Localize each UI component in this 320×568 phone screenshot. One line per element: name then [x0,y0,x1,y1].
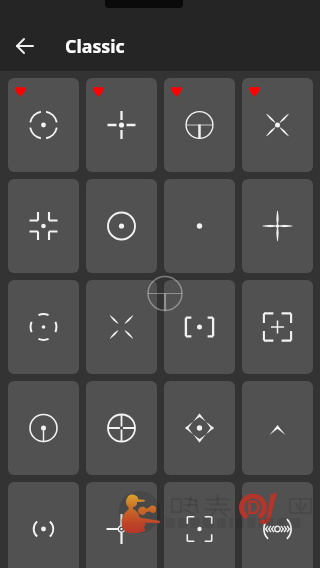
button[interactable]: Reticle 16 [8,482,79,568]
button[interactable]: Reticle 6 [164,179,235,273]
button[interactable]: Reticle 3 [242,78,313,172]
button[interactable]: Reticle 1 [86,78,157,172]
button[interactable]: Back [1,22,49,70]
button[interactable]: Reticle 0 [8,78,79,172]
button[interactable]: Reticle 4 [8,179,79,273]
button[interactable]: Reticle 2 [164,78,235,172]
button[interactable]: Reticle 5 [86,179,157,273]
button[interactable]: Reticle 19 [242,482,313,568]
button[interactable]: Reticle 17 [86,482,157,568]
button[interactable]: Reticle 18 [164,482,235,568]
staticText: Classic [65,34,125,58]
button[interactable]: Reticle 7 [242,179,313,273]
button[interactable]: Reticle 10 [164,280,235,374]
button[interactable]: Reticle 9 [86,280,157,374]
button[interactable]: Reticle 12 [8,381,79,475]
button[interactable]: Reticle 11 [242,280,313,374]
button[interactable]: Reticle 15 [242,381,313,475]
button[interactable]: Reticle 8 [8,280,79,374]
button[interactable]: Reticle 14 [164,381,235,475]
button[interactable]: Reticle 13 [86,381,157,475]
